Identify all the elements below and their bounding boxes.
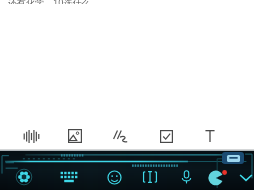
button[interactable]: Input method switcher [8, 164, 40, 190]
staticText: 还有化学，10选什么。 [8, 0, 100, 4]
button[interactable]: Emoji [98, 164, 130, 190]
button[interactable]: Cursor move [134, 164, 166, 190]
button[interactable]: Text format [193, 123, 227, 149]
button[interactable]: Keyboard [53, 164, 85, 190]
button[interactable]: Keyboard badge [222, 152, 244, 164]
button[interactable]: Hide keyboard [230, 164, 254, 190]
button[interactable]: Voice input [14, 123, 48, 149]
button[interactable]: Voice [170, 164, 202, 190]
button[interactable]: Insert picture [58, 123, 92, 149]
button[interactable]: Handwriting [103, 123, 137, 149]
button[interactable]: Assistant [203, 164, 235, 190]
button[interactable]: Checklist [149, 123, 183, 149]
